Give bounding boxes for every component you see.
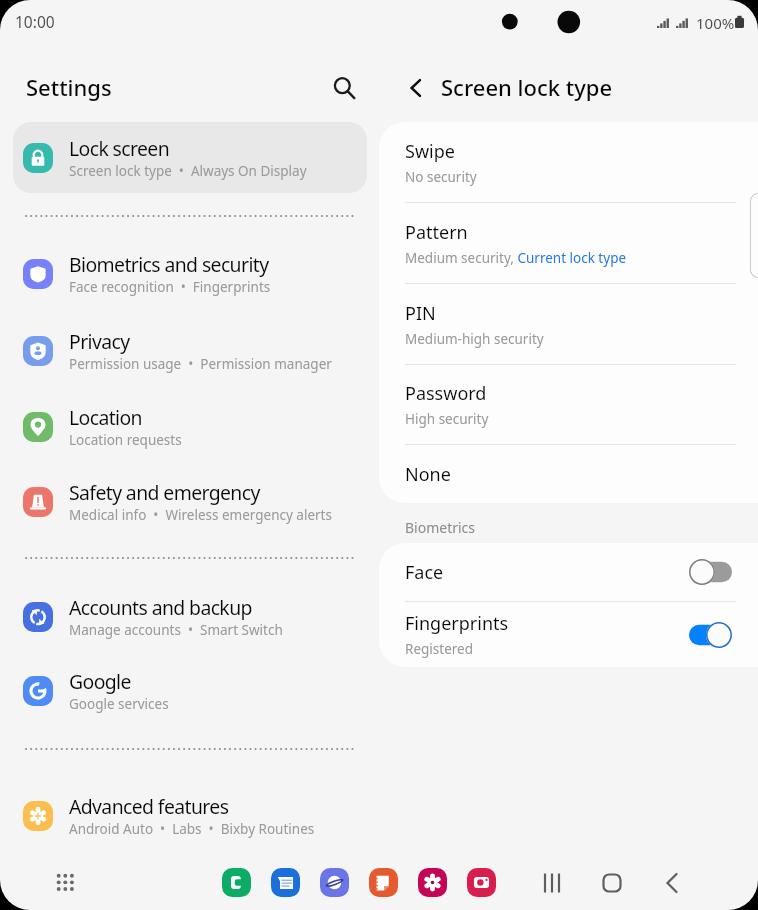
staticText: 10:00 (15, 11, 55, 32)
staticText: Biometrics (405, 518, 476, 537)
button[interactable]: Swipe (379, 122, 758, 202)
staticText: Accounts and backup (69, 594, 252, 620)
staticText: Location requests (69, 431, 182, 449)
staticText: Screen lock type (441, 72, 613, 102)
button[interactable]: Google (13, 655, 367, 726)
button[interactable]: Gallery (418, 868, 447, 897)
button[interactable]: Camera (467, 868, 496, 897)
staticText: None (405, 462, 451, 487)
staticText: Google services (69, 695, 169, 713)
staticText: Biometrics and security (69, 251, 269, 277)
button[interactable]: Biometrics and security (13, 238, 367, 309)
staticText: Lock screen (69, 135, 170, 161)
staticText: Medium security, Current lock type (405, 249, 627, 267)
staticText: Registered (405, 640, 473, 658)
staticText: Safety and emergency (69, 479, 260, 505)
staticText: PIN (405, 301, 436, 326)
staticText: Google (69, 668, 131, 694)
button[interactable]: Pattern (379, 203, 758, 283)
button[interactable]: Internet (320, 868, 349, 897)
button[interactable]: None (379, 445, 758, 503)
staticText: Swipe (405, 139, 455, 164)
staticText: No security (405, 168, 477, 186)
button[interactable]: Privacy (13, 315, 367, 386)
staticText: Medical info • Wireless emergency alerts (69, 506, 332, 524)
staticText: High security (405, 410, 489, 428)
button[interactable]: Home (593, 864, 631, 902)
staticText: Android Auto • Labs • Bixby Routines (69, 820, 315, 838)
button[interactable]: Advanced features (13, 780, 367, 851)
button[interactable]: Safety and emergency (13, 466, 367, 537)
staticText: Advanced features (69, 793, 229, 819)
staticText: Face (405, 560, 444, 585)
staticText: Face recognition • Fingerprints (69, 278, 271, 296)
button[interactable]: Recents (533, 864, 571, 902)
staticText: Permission usage • Permission manager (69, 355, 332, 373)
staticText: Password (405, 381, 487, 406)
staticText: 100% (696, 13, 735, 33)
staticText: Screen lock type • Always On Display (69, 162, 307, 180)
button[interactable]: Messages (271, 868, 300, 897)
button[interactable]: Location (13, 391, 367, 462)
button[interactable]: Notes (369, 868, 398, 897)
button[interactable]: Back (653, 864, 691, 902)
button[interactable]: Search (324, 68, 364, 108)
button[interactable]: Password (379, 365, 758, 444)
staticText: Pattern (405, 220, 468, 245)
staticText: Medium-high security (405, 330, 544, 348)
staticText: Location (69, 404, 142, 430)
staticText: Fingerprints (405, 611, 509, 636)
button[interactable]: All apps (48, 865, 86, 903)
button[interactable]: Fingerprints (379, 602, 758, 667)
button[interactable]: Accounts and backup (13, 581, 367, 652)
button[interactable]: Face (379, 543, 758, 601)
staticText: Privacy (69, 328, 130, 354)
button[interactable]: PIN (379, 284, 758, 364)
button[interactable]: Phone (222, 868, 251, 897)
button[interactable]: Lock screen (13, 122, 367, 193)
staticText: Manage accounts • Smart Switch (69, 621, 283, 639)
button[interactable]: Back (396, 68, 436, 108)
staticText: Settings (26, 72, 112, 102)
